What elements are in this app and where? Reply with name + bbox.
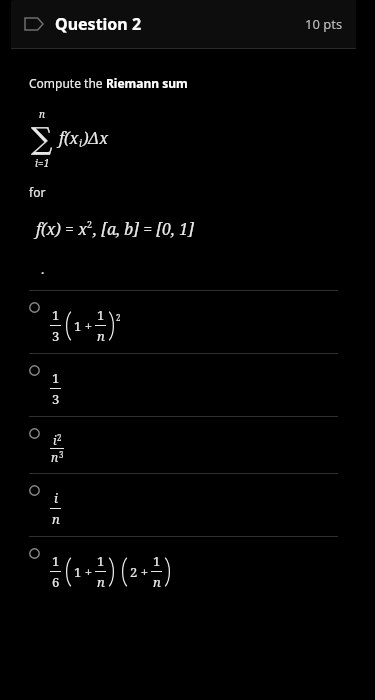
staticText: 2	[87, 218, 93, 230]
staticText: 1	[153, 552, 161, 570]
button[interactable]: 1	[11, 354, 356, 416]
staticText: 1 +	[74, 317, 92, 335]
staticText: i=1	[35, 156, 50, 170]
staticText: ∑	[31, 121, 53, 156]
staticText: 2	[57, 432, 62, 443]
staticText: n	[52, 510, 60, 528]
staticText: f(x) = x	[36, 218, 87, 240]
staticText: 1	[97, 552, 105, 570]
staticText: i	[53, 432, 57, 448]
staticText: 1	[52, 369, 60, 387]
staticText: n	[39, 107, 45, 121]
staticText: i	[54, 489, 58, 507]
staticText: n	[97, 573, 105, 591]
staticText: 2	[116, 312, 121, 323]
button[interactable]: i	[11, 417, 356, 473]
button[interactable]: 1	[11, 537, 356, 599]
staticText: 6	[52, 573, 60, 591]
staticText: 1	[97, 306, 105, 324]
staticText: .	[41, 260, 45, 278]
staticText: 3	[52, 327, 60, 345]
staticText: 1	[52, 552, 60, 570]
staticText: , [a, b] = [0, 1]	[93, 218, 194, 240]
other: Question flag	[24, 16, 44, 32]
staticText: 3	[52, 390, 60, 408]
staticText: i	[79, 136, 83, 150]
button[interactable]: Question flag	[11, 0, 356, 48]
staticText: f(x	[59, 127, 79, 149]
staticText: )Δx	[83, 127, 108, 149]
button[interactable]: 1	[11, 291, 356, 353]
staticText: 2 +	[130, 563, 148, 581]
staticText: 10 pts	[305, 15, 343, 33]
staticText: n	[153, 573, 161, 591]
staticText: n	[97, 327, 105, 345]
staticText: 1 +	[74, 563, 92, 581]
staticText: 3	[59, 449, 64, 460]
staticText: Riemann sum	[106, 75, 188, 91]
staticText: n	[51, 449, 59, 465]
staticText: 1	[52, 306, 60, 324]
staticText: Question 2	[55, 13, 142, 35]
staticText: for	[29, 184, 46, 200]
staticText: Compute the	[29, 75, 106, 91]
button[interactable]: i	[11, 474, 356, 536]
